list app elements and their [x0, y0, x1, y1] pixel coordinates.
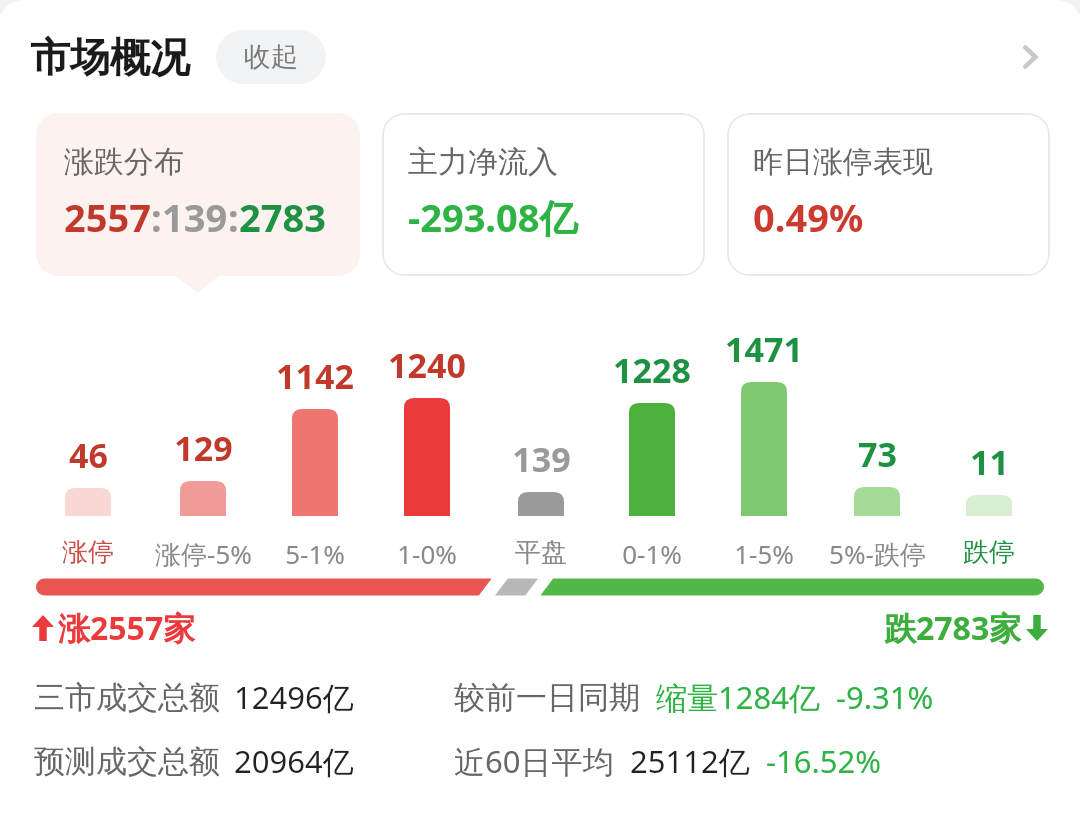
staticText: 市场概况: [30, 32, 190, 82]
staticText: -9.31%: [836, 676, 934, 718]
staticText: 较前一日同期: [454, 678, 640, 717]
button[interactable]: 昨日涨停表现: [727, 113, 1050, 276]
staticText: 0-1%: [622, 536, 682, 571]
staticText: 139: [512, 436, 571, 482]
staticText: 1-0%: [397, 536, 457, 571]
staticText: 平盘: [515, 536, 567, 569]
staticText: :: [151, 191, 162, 243]
button[interactable]: 主力净流入: [382, 113, 705, 276]
staticText: 5-1%: [285, 536, 345, 571]
button[interactable]: 5%-跌停: [797, 536, 957, 572]
button[interactable]: 5-1%: [235, 536, 395, 571]
staticText: 涨跌分布: [64, 143, 184, 181]
staticText: 三市成交总额: [34, 678, 220, 717]
button[interactable]: 涨停-5%: [123, 536, 283, 572]
staticText: 46: [69, 432, 108, 478]
staticText: 129: [174, 425, 233, 471]
staticText: 收起: [244, 40, 298, 74]
staticText: 2557: [64, 191, 151, 243]
button[interactable]: 收起: [216, 30, 326, 84]
button[interactable]: 0-1%: [572, 536, 732, 571]
button[interactable]: 平盘: [461, 536, 621, 569]
staticText: 昨日涨停表现: [753, 143, 933, 181]
button[interactable]: 1-5%: [684, 536, 844, 571]
staticText: 预测成交总额: [34, 742, 220, 781]
staticText: 涨停-5%: [155, 536, 252, 572]
staticText: 12496亿: [234, 676, 354, 718]
staticText: 1228: [613, 347, 691, 393]
staticText: 5%-跌停: [829, 536, 926, 572]
staticText: -16.52%: [766, 740, 881, 782]
staticText: 跌2783家: [884, 606, 1022, 650]
button[interactable]: 涨停: [8, 536, 168, 569]
staticText: 2783: [239, 191, 326, 243]
staticText: 涨停: [62, 536, 114, 569]
button[interactable]: 跌停: [909, 536, 1069, 569]
staticText: :: [228, 191, 239, 243]
staticText: 73: [858, 431, 897, 477]
staticText: 近60日平均: [454, 740, 614, 782]
staticText: 139: [162, 191, 228, 243]
staticText: 20964亿: [234, 740, 354, 782]
staticText: 1142: [276, 353, 354, 399]
staticText: 1-5%: [734, 536, 794, 571]
staticText: 主力净流入: [408, 143, 558, 181]
staticText: 涨2557家: [58, 606, 196, 650]
staticText: -293.08亿: [408, 191, 578, 243]
staticText: 11: [970, 439, 1009, 485]
staticText: 0.49%: [753, 191, 864, 243]
button[interactable]: 市场概况: [30, 32, 190, 82]
staticText: 1240: [388, 342, 466, 388]
staticText: 1471: [725, 326, 803, 372]
button[interactable]: More: [1002, 29, 1058, 85]
staticText: 25112亿: [630, 740, 750, 782]
button[interactable]: 1-0%: [347, 536, 507, 571]
button[interactable]: 涨跌分布: [36, 113, 360, 276]
staticText: 跌停: [963, 536, 1015, 569]
staticText: 缩量1284亿: [656, 676, 820, 718]
